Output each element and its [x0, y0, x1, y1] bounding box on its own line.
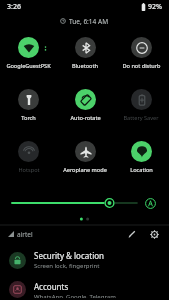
- staticText: airtel: [17, 230, 33, 239]
- staticText: 92%: [148, 2, 162, 12]
- staticText: Do not disturb: [122, 62, 161, 70]
- staticText: Torch: [21, 114, 36, 122]
- button[interactable]: Bluetooth: [57, 32, 113, 70]
- staticText: GoogleGuestPSK: [6, 62, 51, 70]
- staticText: Screen lock, fingerprint: [34, 262, 100, 270]
- staticText: Location: [130, 166, 153, 174]
- button[interactable]: Do not disturb: [113, 32, 169, 70]
- button[interactable]: Aeroplane mode: [57, 136, 113, 174]
- button[interactable]: Battery Saver: [113, 84, 169, 122]
- button[interactable]: Hotspot: [0, 136, 57, 174]
- button[interactable]: Edit tiles: [125, 227, 139, 241]
- staticText: Auto-rotate: [70, 114, 101, 122]
- staticText: Tue, 6:14 AM: [69, 17, 109, 26]
- staticText: Aeroplane mode: [63, 166, 107, 174]
- staticText: Bluetooth: [72, 62, 98, 70]
- button[interactable]: Auto brightness: [144, 197, 157, 210]
- staticText: Accounts: [34, 281, 69, 292]
- button[interactable]: Location: [113, 136, 169, 174]
- button[interactable]: Accounts: [0, 279, 169, 300]
- staticText: 3:26: [7, 2, 21, 12]
- staticText: Security & location: [34, 250, 105, 261]
- button[interactable]: GoogleGuestPSK: [0, 32, 57, 70]
- staticText: Hotspot: [18, 166, 40, 174]
- button[interactable]: [12, 195, 137, 211]
- button[interactable]: Auto-rotate: [57, 84, 113, 122]
- staticText: WhatsApp, Google, Telegram: [34, 293, 116, 298]
- button[interactable]: Torch: [0, 84, 57, 122]
- button[interactable]: Settings: [147, 227, 161, 241]
- button[interactable]: Security & location: [0, 248, 169, 272]
- staticText: Battery Saver: [123, 114, 159, 122]
